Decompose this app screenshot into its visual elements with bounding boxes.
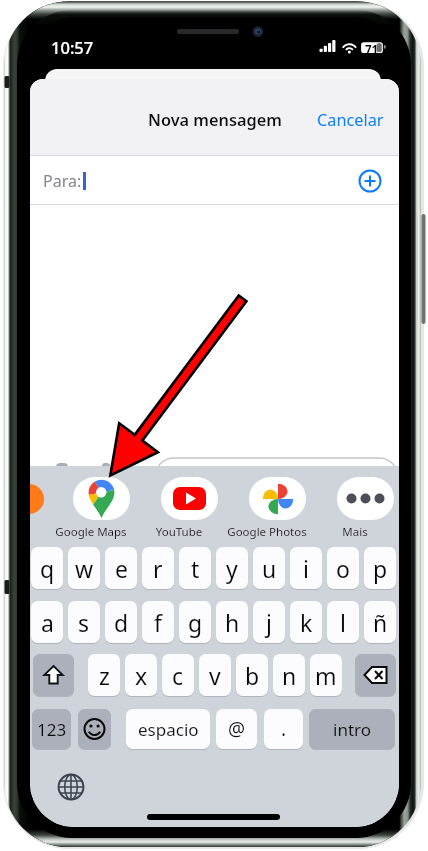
button[interactable]: ñ bbox=[364, 601, 396, 643]
button[interactable]: f bbox=[142, 601, 174, 643]
staticText: j bbox=[266, 607, 272, 638]
button[interactable]: z bbox=[88, 654, 120, 696]
staticText: c bbox=[172, 660, 184, 691]
button[interactable]: o bbox=[327, 547, 359, 589]
staticText: Google Photos bbox=[223, 524, 311, 540]
button[interactable]: t bbox=[179, 547, 211, 589]
staticText: u bbox=[262, 553, 277, 584]
button[interactable]: g bbox=[179, 601, 211, 643]
staticText: n bbox=[282, 660, 297, 691]
staticText: 10:57 bbox=[51, 36, 94, 58]
staticText: 123 bbox=[37, 718, 67, 741]
button[interactable]: d bbox=[105, 601, 137, 643]
staticText: @ bbox=[228, 716, 246, 742]
button[interactable]: h bbox=[216, 601, 248, 643]
button[interactable]: x bbox=[125, 654, 157, 696]
staticText: a bbox=[41, 607, 54, 638]
button[interactable]: j bbox=[253, 601, 285, 643]
staticText: Para: bbox=[43, 170, 82, 192]
button[interactable]: v bbox=[199, 654, 231, 696]
button[interactable]: Google Maps bbox=[57, 466, 145, 541]
button[interactable] bbox=[78, 709, 111, 749]
staticText: Mais bbox=[311, 524, 399, 540]
button[interactable]: c bbox=[162, 654, 194, 696]
button[interactable]: w bbox=[68, 547, 100, 589]
button[interactable]: Add contact bbox=[358, 169, 382, 193]
button[interactable]: l bbox=[327, 601, 359, 643]
button[interactable] bbox=[33, 654, 74, 696]
button[interactable]: m bbox=[310, 654, 342, 696]
staticText: h bbox=[225, 607, 240, 638]
staticText: p bbox=[373, 553, 388, 584]
button[interactable]: Cancelar bbox=[313, 101, 390, 139]
staticText: v bbox=[209, 660, 221, 691]
staticText: YouTube bbox=[135, 524, 223, 540]
staticText: intro bbox=[333, 718, 371, 741]
staticText: Google Maps bbox=[47, 524, 135, 540]
button[interactable]: Mais bbox=[321, 466, 399, 541]
staticText: y bbox=[226, 553, 238, 584]
staticText: f bbox=[154, 607, 162, 638]
staticText: b bbox=[245, 660, 260, 691]
staticText: e bbox=[115, 553, 128, 584]
staticText: q bbox=[40, 553, 55, 584]
button[interactable]: e bbox=[105, 547, 137, 589]
button[interactable]: YouTube bbox=[145, 466, 233, 541]
button[interactable] bbox=[355, 654, 396, 696]
button[interactable]: intro bbox=[309, 709, 395, 749]
staticText: ñ bbox=[373, 607, 388, 638]
button[interactable]: n bbox=[273, 654, 305, 696]
button[interactable]: s bbox=[68, 601, 100, 643]
button[interactable]: b bbox=[236, 654, 268, 696]
staticText: Nova mensagem bbox=[148, 109, 282, 131]
button[interactable]: k bbox=[290, 601, 322, 643]
button[interactable]: i bbox=[290, 547, 322, 589]
staticText: d bbox=[114, 607, 129, 638]
staticText: 71 bbox=[365, 42, 379, 58]
staticText: t bbox=[191, 553, 200, 584]
staticText: i bbox=[303, 553, 309, 584]
staticText: l bbox=[340, 607, 346, 638]
staticText: k bbox=[300, 607, 313, 638]
staticText: r bbox=[153, 553, 163, 584]
staticText: o bbox=[336, 553, 350, 584]
button[interactable]: @ bbox=[216, 709, 257, 749]
staticText: g bbox=[188, 607, 203, 638]
button[interactable]: espacio bbox=[126, 709, 210, 749]
button[interactable]: Change keyboard bbox=[57, 773, 85, 801]
button[interactable]: p bbox=[364, 547, 396, 589]
staticText: s bbox=[78, 607, 90, 638]
button[interactable]: r bbox=[142, 547, 174, 589]
staticText: espacio bbox=[138, 718, 199, 741]
staticText: w bbox=[75, 553, 94, 584]
button[interactable]: . bbox=[264, 709, 303, 749]
button[interactable]: a bbox=[31, 601, 63, 643]
button[interactable]: 123 bbox=[32, 709, 71, 749]
button[interactable]: q bbox=[31, 547, 63, 589]
staticText: z bbox=[99, 660, 110, 691]
button[interactable]: Google Photos bbox=[233, 466, 321, 541]
staticText: x bbox=[135, 660, 148, 691]
button[interactable]: y bbox=[216, 547, 248, 589]
staticText: Cancelar bbox=[317, 109, 384, 131]
staticText: m bbox=[315, 660, 337, 691]
staticText: . bbox=[281, 716, 287, 742]
button[interactable]: u bbox=[253, 547, 285, 589]
